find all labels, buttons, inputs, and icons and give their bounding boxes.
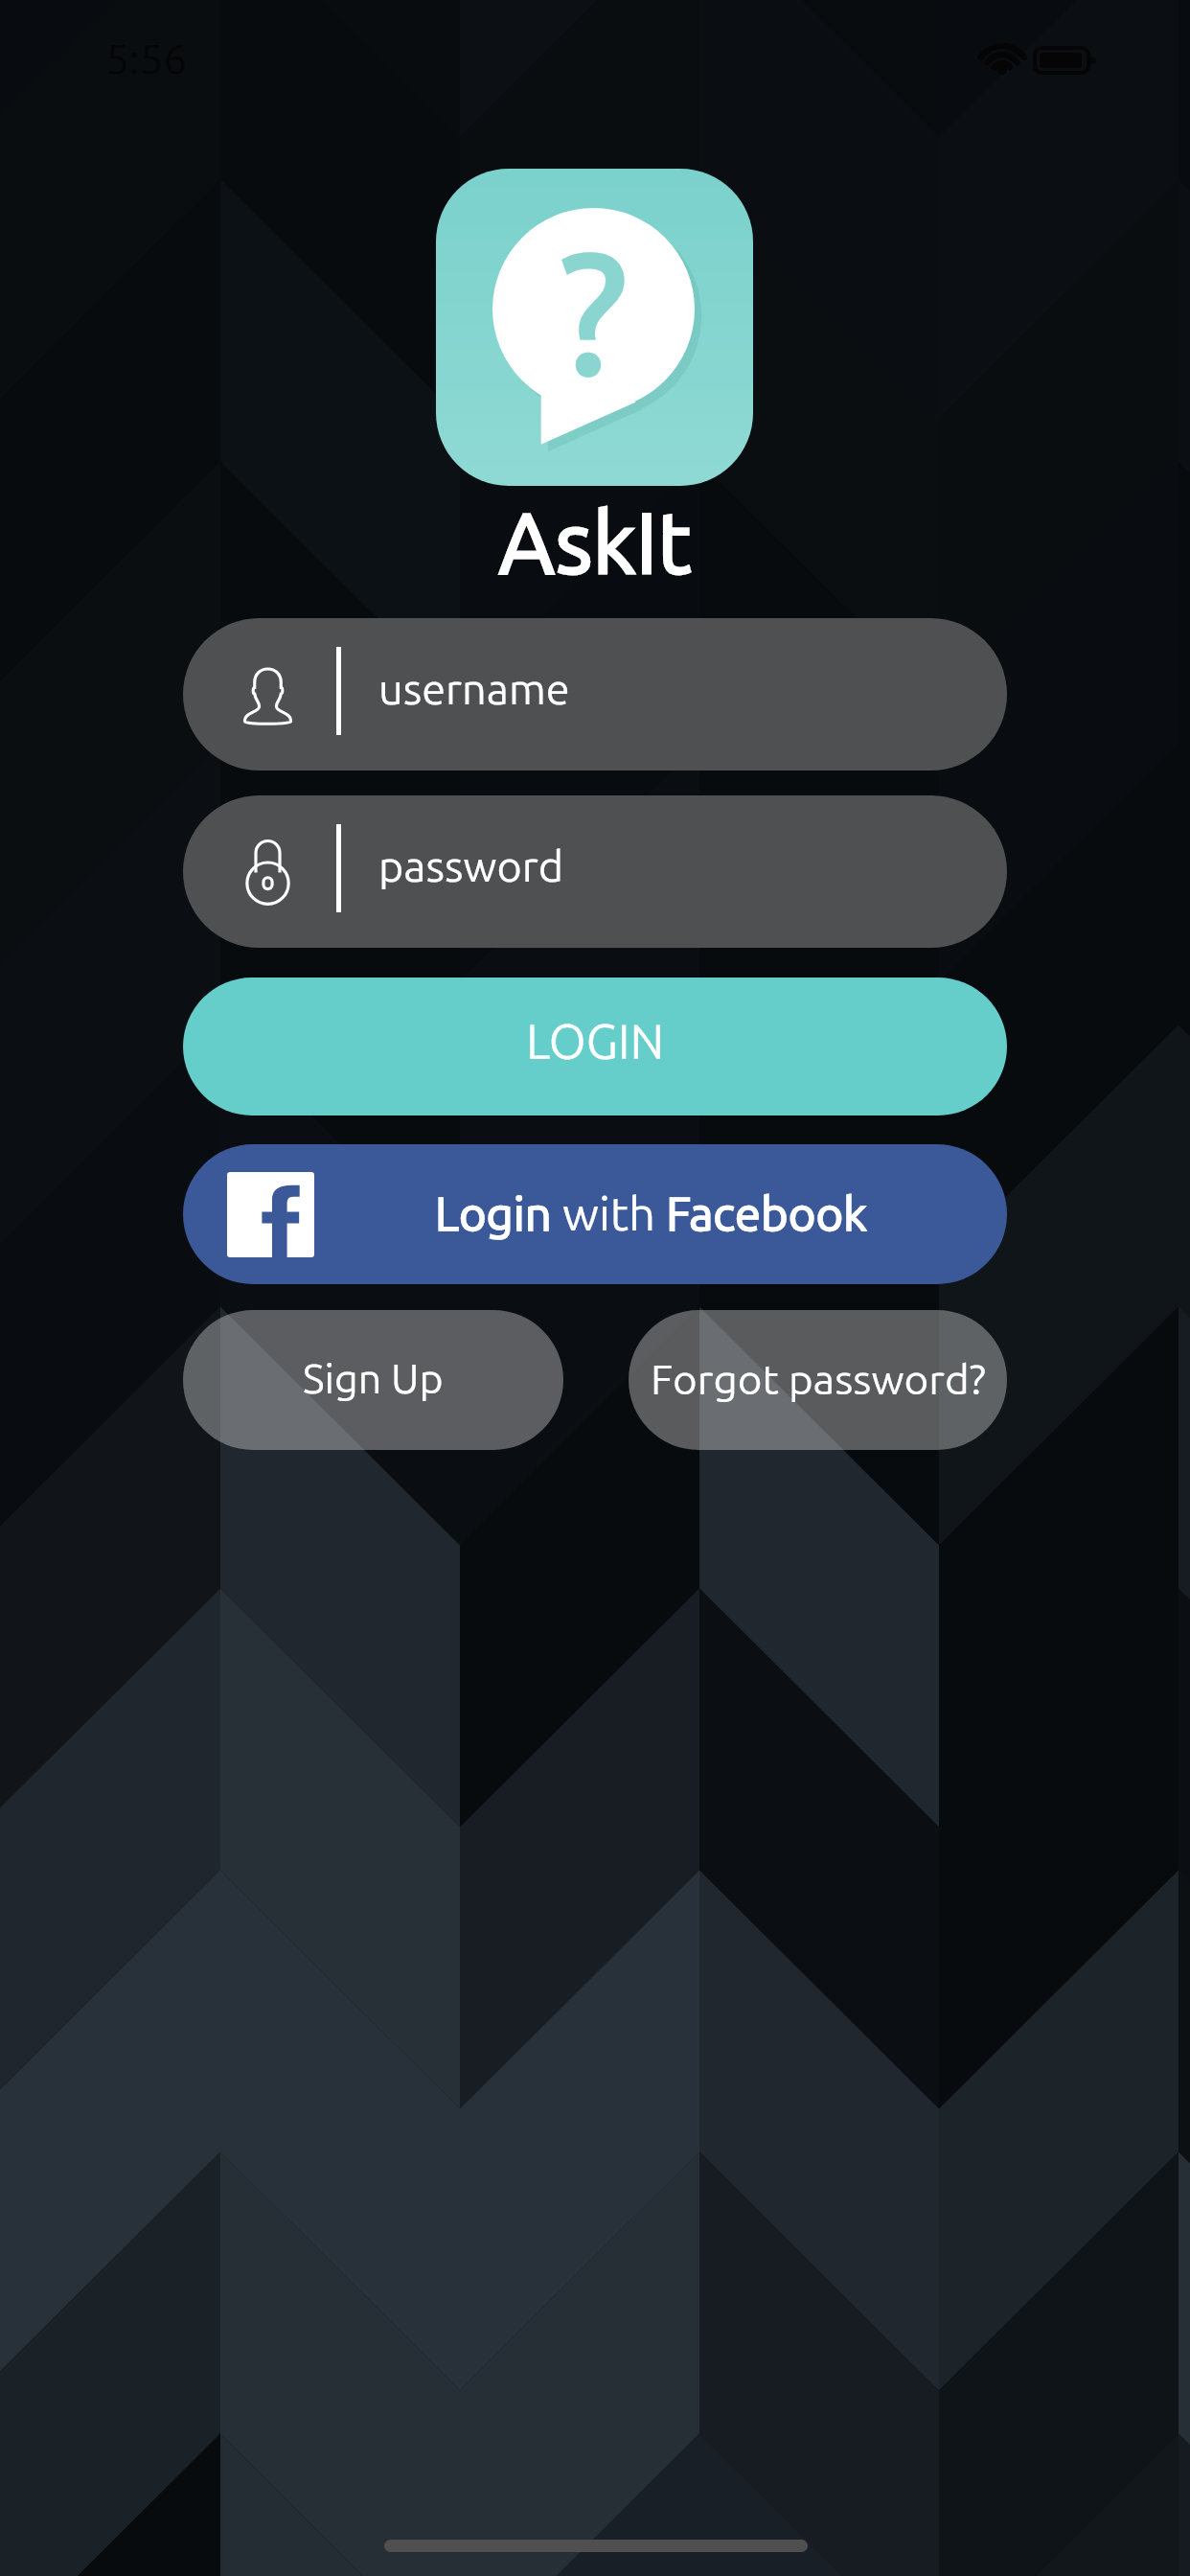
staticText: Sign Up bbox=[303, 1355, 444, 1401]
staticText: LOGIN bbox=[526, 1014, 665, 1068]
button[interactable]: username bbox=[183, 618, 1007, 770]
staticText: AskIt bbox=[0, 494, 1190, 589]
staticText: 5:56 bbox=[105, 34, 188, 81]
button[interactable]: Sign Up bbox=[183, 1310, 563, 1450]
button[interactable]: Forgot password? bbox=[629, 1310, 1007, 1450]
staticText: password bbox=[378, 841, 564, 889]
staticText: Login with Facebook bbox=[435, 1186, 867, 1239]
staticText: username bbox=[378, 664, 570, 712]
button[interactable]: Login with Facebook bbox=[183, 1144, 1007, 1284]
button[interactable]: LOGIN bbox=[183, 977, 1007, 1115]
staticText: Forgot password? bbox=[651, 1355, 986, 1402]
button[interactable]: password bbox=[183, 795, 1007, 948]
staticText: ? bbox=[561, 218, 627, 404]
